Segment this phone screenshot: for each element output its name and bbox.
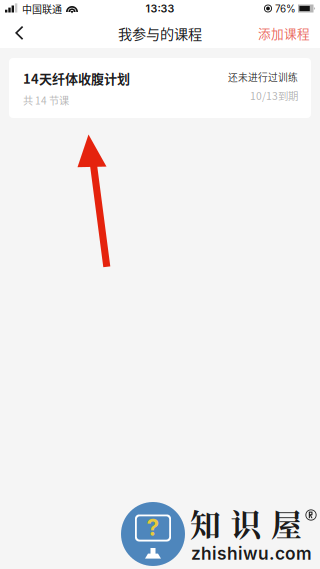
staticText: 14天纤体收腹计划 bbox=[23, 69, 130, 88]
staticText: 13:33 bbox=[145, 2, 174, 15]
staticText: 还未进行过训练 bbox=[228, 70, 298, 84]
staticText: zhishiwu.com bbox=[191, 543, 312, 564]
staticText: 添加课程 bbox=[258, 24, 310, 42]
staticText: 10/13到期 bbox=[250, 88, 298, 103]
staticText: 共 14 节课 bbox=[23, 93, 69, 107]
button[interactable]: Back bbox=[0, 18, 38, 48]
staticText: 屋 bbox=[271, 501, 302, 545]
staticText: 知 bbox=[190, 501, 221, 545]
staticText: ? bbox=[146, 514, 159, 541]
button[interactable]: 14天纤体收腹计划 bbox=[9, 58, 311, 118]
staticText: 识 bbox=[230, 501, 261, 545]
staticText: 我参与的课程 bbox=[118, 23, 202, 43]
staticText: 76% bbox=[275, 3, 296, 15]
staticText: 中国联通 bbox=[22, 2, 62, 16]
button[interactable]: 添加课程 bbox=[250, 18, 320, 48]
